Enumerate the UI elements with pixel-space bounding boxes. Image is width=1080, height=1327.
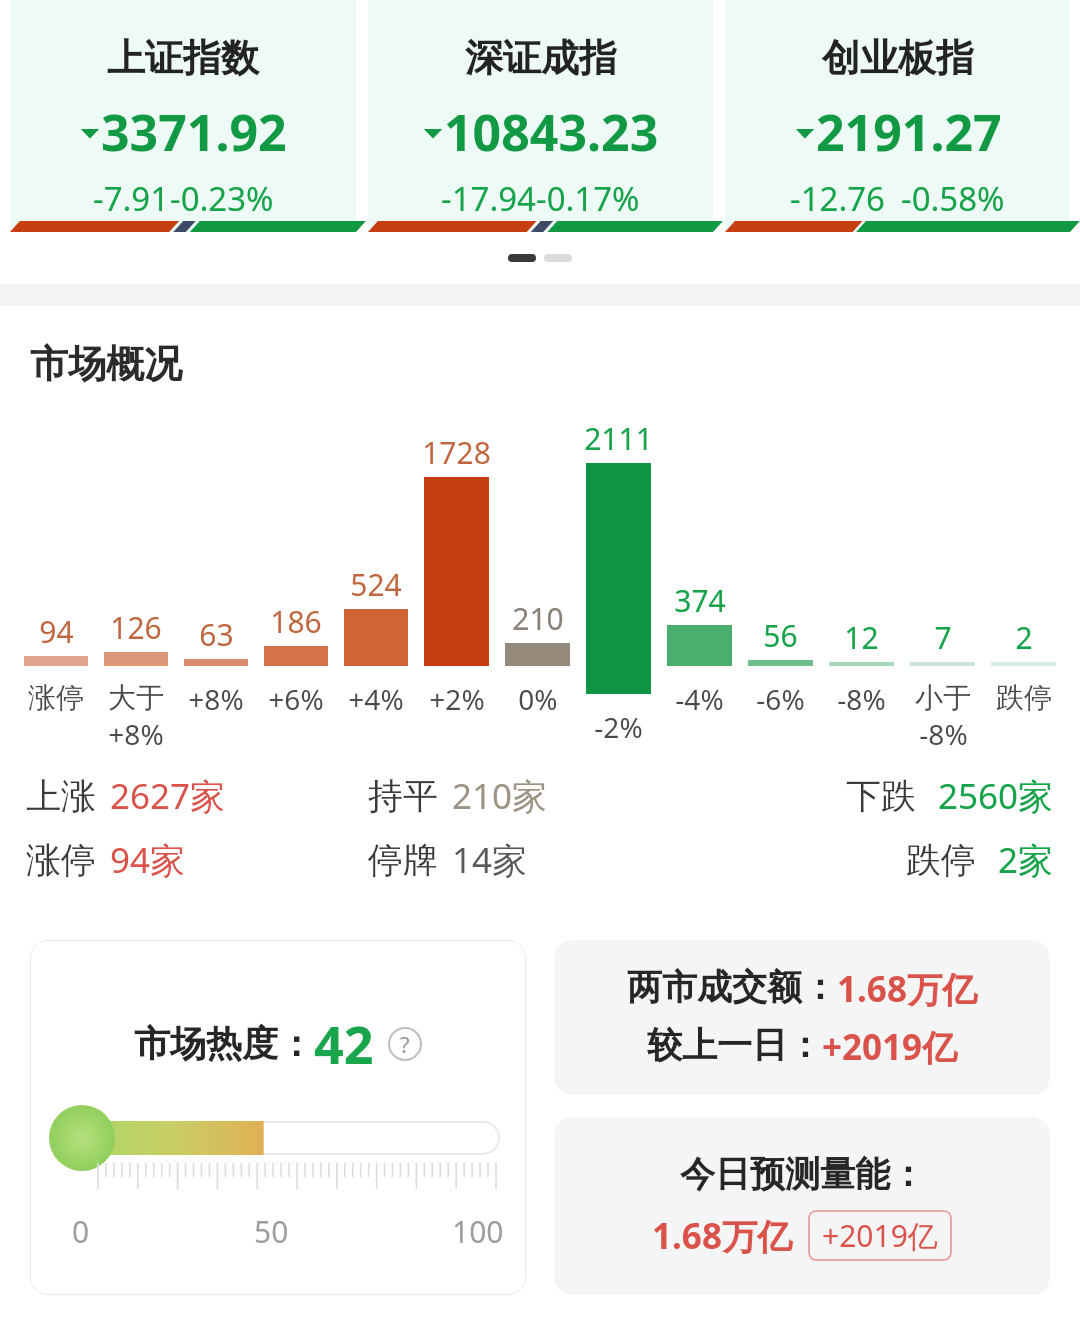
staticText: 涨停 (28, 680, 84, 715)
staticText: 210家 (452, 772, 548, 820)
staticText: 市场概况 (30, 340, 182, 388)
button[interactable]: 今日预测量能： (554, 1117, 1050, 1295)
staticText: 持平 (368, 774, 438, 818)
button[interactable]: 186 (256, 418, 336, 758)
staticText: 12 (844, 617, 879, 658)
staticText: 小于 (915, 680, 971, 715)
staticText: +2% (429, 680, 485, 718)
button[interactable]: 2111 (578, 418, 659, 758)
button[interactable]: 上涨 (26, 772, 368, 820)
staticText: 1728 (422, 432, 491, 473)
staticText: 深证成指 (465, 34, 617, 82)
staticText: 126 (110, 607, 162, 648)
staticText: 大于 (108, 680, 164, 715)
staticText: 42 (314, 1008, 374, 1079)
staticText: +6% (268, 680, 324, 718)
staticText: 2627家 (110, 772, 226, 820)
button[interactable]: 126 (96, 418, 176, 758)
button[interactable]: 94 (16, 418, 96, 758)
staticText: -12.76 (790, 176, 885, 221)
button[interactable]: 停牌 (368, 836, 711, 884)
button[interactable]: 帮助 (388, 1027, 422, 1061)
staticText: +2019亿 (822, 1215, 938, 1256)
staticText: 创业板指 (822, 34, 974, 82)
staticText: -8% (919, 715, 968, 753)
staticText: 涨停 (26, 838, 96, 882)
button[interactable]: 下跌 (711, 772, 1054, 820)
staticText: 今日预测量能： (680, 1152, 925, 1196)
staticText: 56 (763, 615, 798, 656)
staticText: 2191.27 (816, 98, 1002, 166)
staticText: 停牌 (368, 838, 438, 882)
staticText: 210 (512, 598, 564, 639)
staticText: ? (400, 1029, 410, 1059)
staticText: 2家 (998, 836, 1054, 884)
staticText: 10843.23 (444, 98, 659, 166)
button[interactable]: 210 (497, 418, 578, 758)
staticText: -6% (756, 680, 805, 718)
staticText: 较上一日： (647, 1023, 822, 1067)
button[interactable]: 涨停 (26, 836, 368, 884)
button[interactable]: 两市成交额： (554, 940, 1050, 1095)
button[interactable]: 深证成指 (368, 0, 713, 232)
staticText: 50 (254, 1211, 289, 1252)
button[interactable]: 56 (740, 418, 821, 758)
staticText: +4% (348, 680, 404, 718)
staticText: 374 (674, 580, 726, 621)
button[interactable]: 1728 (416, 418, 497, 758)
staticText: 0% (518, 680, 558, 718)
staticText: 2560家 (938, 772, 1054, 820)
button[interactable]: 跌停 (711, 836, 1054, 884)
staticText: 市场热度： (134, 1021, 314, 1066)
button[interactable]: 374 (659, 418, 740, 758)
staticText: -0.58% (901, 176, 1005, 221)
staticText: -7.91 (93, 176, 170, 221)
staticText: +8% (108, 715, 164, 753)
staticText: +8% (188, 680, 244, 718)
button[interactable]: 7 (902, 418, 983, 758)
button[interactable]: 创业板指 (725, 0, 1070, 232)
staticText: 524 (350, 564, 402, 605)
button[interactable]: 12 (821, 418, 902, 758)
staticText: 7 (934, 617, 952, 658)
staticText: 2 (1015, 617, 1033, 658)
staticText: 上涨 (26, 774, 96, 818)
staticText: 14家 (452, 836, 528, 884)
staticText: 0 (72, 1211, 90, 1252)
button[interactable]: 市场热度： (30, 940, 526, 1295)
button[interactable]: 2 (983, 418, 1064, 758)
button[interactable]: 63 (176, 418, 256, 758)
staticText: -17.94 (441, 176, 536, 221)
staticText: 1.68万亿 (652, 1212, 792, 1260)
staticText: 63 (199, 614, 234, 655)
staticText: 94 (39, 611, 74, 652)
staticText: 上证指数 (107, 34, 259, 82)
staticText: 跌停 (906, 838, 976, 882)
staticText: -0.17% (536, 176, 640, 221)
staticText: +2019亿 (822, 1023, 958, 1071)
staticText: 两市成交额： (627, 965, 837, 1009)
staticText: 3371.92 (101, 98, 287, 166)
staticText: -8% (837, 680, 886, 718)
button[interactable]: 524 (336, 418, 416, 758)
button[interactable]: 持平 (368, 772, 711, 820)
staticText: -0.23% (170, 176, 274, 221)
staticText: 下跌 (846, 774, 916, 818)
staticText: 跌停 (996, 680, 1052, 715)
staticText: 94家 (110, 836, 186, 884)
staticText: 100 (452, 1211, 504, 1252)
staticText: 1.68万亿 (837, 965, 977, 1013)
staticText: 186 (270, 601, 322, 642)
staticText: -2% (594, 708, 643, 746)
button[interactable]: 上证指数 (10, 0, 356, 232)
staticText: -4% (675, 680, 724, 718)
staticText: 2111 (584, 418, 653, 459)
